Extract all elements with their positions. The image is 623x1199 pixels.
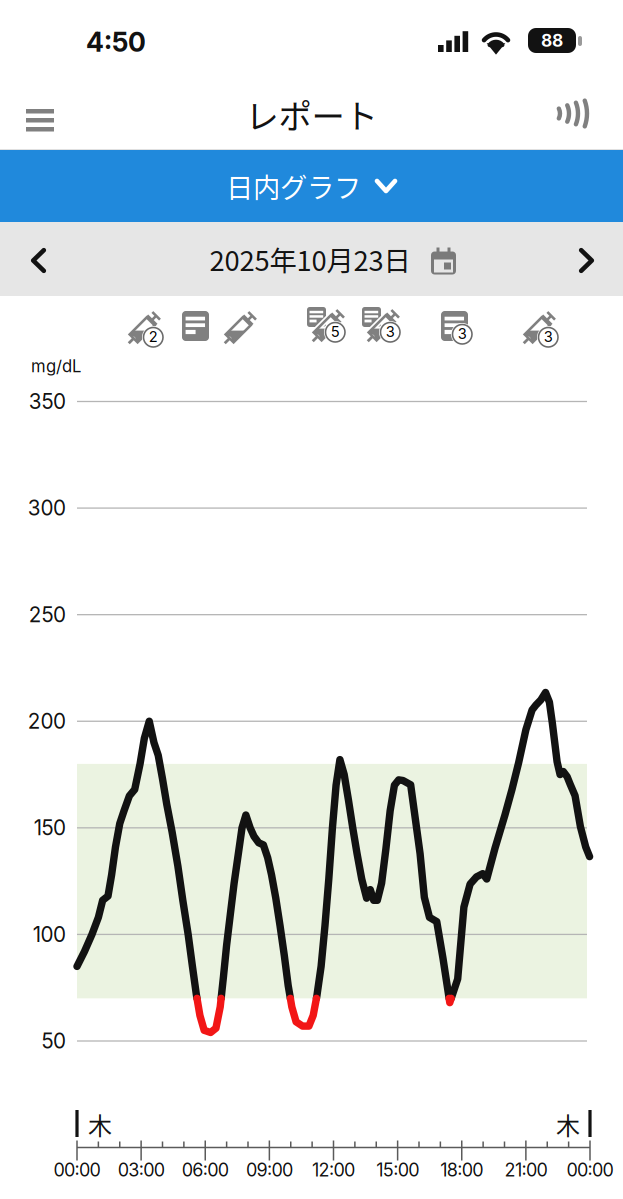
staticText: レポート xyxy=(245,90,377,138)
staticText: 100 xyxy=(33,922,66,947)
button[interactable]: 日内グラフ xyxy=(0,150,623,222)
staticText: 21:00 xyxy=(504,1159,547,1181)
staticText: 木 xyxy=(556,1107,580,1142)
button[interactable]: Scan sensor xyxy=(535,86,599,140)
staticText: 250 xyxy=(29,602,66,627)
staticText: 88 xyxy=(541,30,563,51)
staticText: 350 xyxy=(29,389,66,414)
button[interactable]: 2025年10月23日 xyxy=(207,235,456,283)
button[interactable]: Menu xyxy=(10,93,70,147)
staticText: 15:00 xyxy=(376,1159,419,1181)
staticText: 3 xyxy=(386,323,395,341)
staticText: 12:00 xyxy=(312,1159,355,1181)
staticText: 3 xyxy=(544,328,553,346)
staticText: 4:50 xyxy=(86,26,146,58)
staticText: 00:00 xyxy=(53,1159,100,1181)
staticText: 日内グラフ xyxy=(226,166,361,206)
staticText: 50 xyxy=(41,1028,66,1053)
staticText: 2025年10月23日 xyxy=(209,239,410,279)
staticText: 3 xyxy=(458,325,467,343)
staticText: 06:00 xyxy=(182,1159,229,1181)
staticText: 木 xyxy=(88,1107,112,1142)
staticText: 300 xyxy=(28,496,66,521)
staticText: 150 xyxy=(34,815,66,840)
staticText: 18:00 xyxy=(440,1159,483,1181)
staticText: 5 xyxy=(331,323,340,341)
staticText: 09:00 xyxy=(246,1159,293,1181)
button[interactable]: Next day xyxy=(563,232,610,289)
button[interactable]: Previous day xyxy=(15,232,62,289)
staticText: 2 xyxy=(149,328,158,346)
staticText: mg/dL xyxy=(31,356,81,376)
staticText: 03:00 xyxy=(118,1159,165,1181)
staticText: 00:00 xyxy=(566,1159,613,1181)
staticText: 200 xyxy=(28,709,66,734)
